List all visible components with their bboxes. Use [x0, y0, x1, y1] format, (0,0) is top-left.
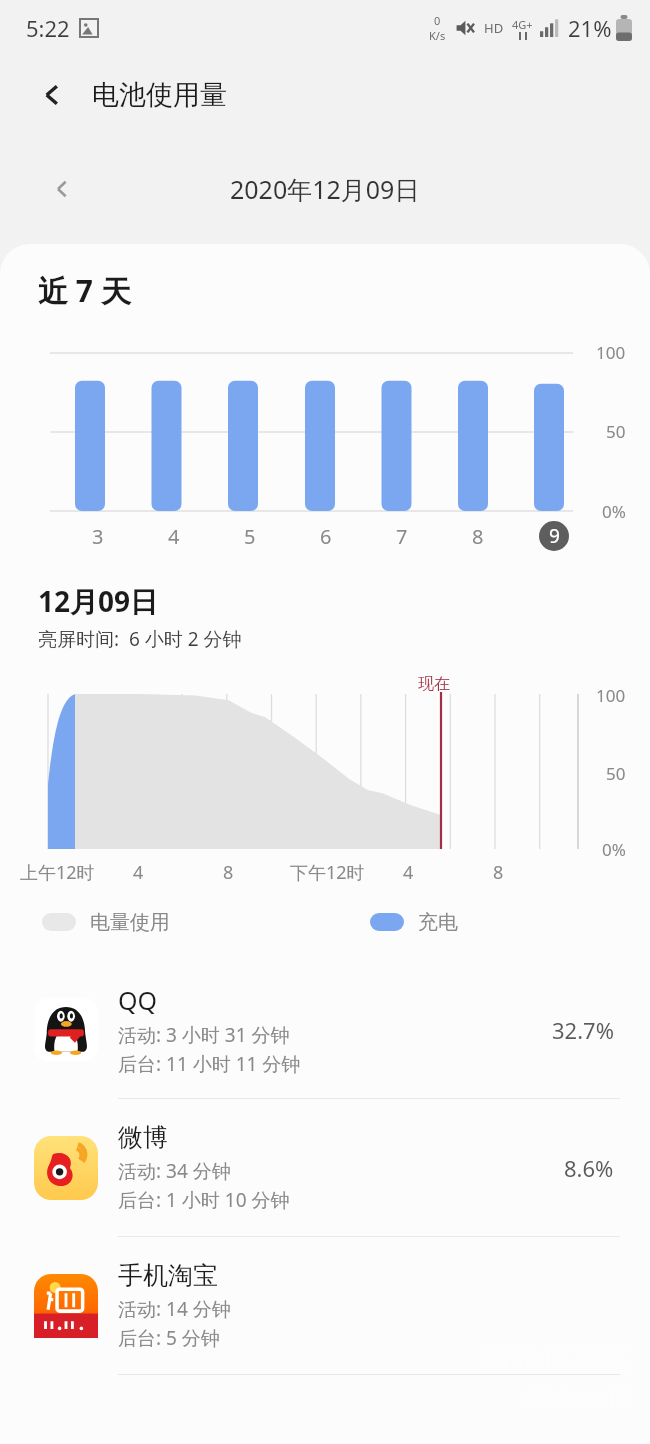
staticText: 后台: 5 分钟	[118, 1325, 220, 1351]
staticText: 50	[606, 762, 626, 785]
staticText: 微博	[118, 1122, 168, 1153]
staticText: 盖乐世社区	[482, 1339, 632, 1377]
button[interactable]: QQ	[0, 961, 650, 1098]
staticText: 近 7 天	[38, 270, 131, 311]
button[interactable]: 4	[136, 516, 212, 556]
staticText: 8	[223, 860, 234, 885]
staticText: 4	[168, 523, 180, 550]
staticText: 32.7%	[552, 1015, 614, 1045]
staticText: 电量使用	[90, 910, 170, 935]
staticText: 9	[549, 523, 560, 549]
button[interactable]: 6	[288, 516, 364, 556]
staticText: 4	[133, 860, 144, 885]
staticText: 活动: 34 分钟	[118, 1158, 231, 1184]
staticText: 5	[244, 523, 256, 550]
staticText: 8	[493, 860, 504, 885]
button[interactable]: Back	[26, 69, 78, 121]
staticText: 亮屏时间: 6 小时 2 分钟	[38, 626, 242, 652]
staticText: 2020年12月09日	[230, 172, 420, 206]
button[interactable]: Previous day	[36, 163, 88, 215]
staticText: 活动: 3 小时 31 分钟	[118, 1022, 290, 1048]
staticText: K/s	[429, 28, 446, 43]
staticText: 8	[472, 523, 484, 550]
staticText: 0%	[602, 500, 626, 523]
button[interactable]: 7	[364, 516, 440, 556]
staticText: 后台: 11 小时 11 分钟	[118, 1051, 301, 1077]
staticText: 上午12时	[20, 860, 95, 885]
staticText: 50	[606, 420, 626, 443]
staticText: 3	[92, 523, 104, 550]
staticText: 手机淘宝	[118, 1260, 218, 1291]
staticText: 下午12时	[290, 860, 365, 885]
staticText: 100	[596, 684, 626, 707]
staticText: 活动: 14 分钟	[118, 1296, 231, 1322]
staticText: QQ	[118, 983, 158, 1017]
staticText: 8.6%	[564, 1153, 614, 1183]
staticText: 12月09日	[38, 582, 159, 620]
staticText: 4	[403, 860, 414, 885]
staticText: 4G+	[512, 17, 533, 32]
button[interactable]: 5	[212, 516, 288, 556]
staticText: 电池使用量	[92, 78, 227, 112]
staticText: 7	[396, 523, 408, 550]
staticText: 6	[320, 523, 332, 550]
button[interactable]: 3	[60, 516, 136, 556]
staticText: 0	[434, 13, 441, 28]
button[interactable]: 微博	[0, 1099, 650, 1236]
staticText: 21%	[568, 13, 612, 43]
staticText: 现在	[418, 674, 450, 694]
staticText: 后台: 1 小时 10 分钟	[118, 1187, 290, 1213]
staticText: 0%	[602, 838, 626, 861]
staticText: 充电	[418, 910, 458, 935]
button[interactable]: 9	[516, 516, 592, 556]
staticText: HD	[484, 19, 504, 37]
staticText: 100	[596, 341, 626, 364]
button[interactable]: 手机淘宝	[0, 1237, 650, 1374]
button[interactable]: 8	[440, 516, 516, 556]
staticText: 5:22	[26, 13, 70, 43]
